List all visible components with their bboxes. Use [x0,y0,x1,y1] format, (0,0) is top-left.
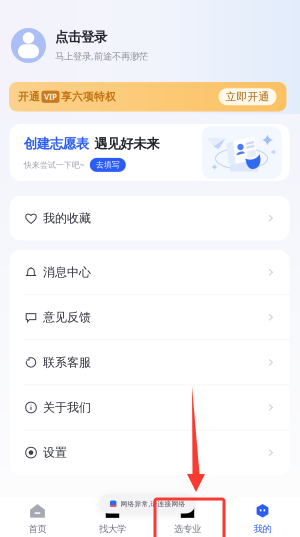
button[interactable]: 我的收藏 [9,196,289,240]
staticText: 马上登录,前途不再渺茫 [55,50,148,62]
staticText: 首页 [28,523,46,535]
staticText: 点击登录 [55,29,107,45]
staticText: 立即开通 [225,90,269,103]
button[interactable]: 关于我们 [9,385,289,430]
staticText: 联系客服 [43,355,91,370]
button[interactable]: 我的 [225,496,300,537]
button[interactable]: 消息中心 [9,250,289,294]
button[interactable]: 设置 [9,430,289,475]
staticText: 关于我们 [43,400,91,415]
button[interactable]: 联系客服 [9,340,289,385]
button[interactable]: 意见反馈 [9,295,289,339]
button[interactable]: 点击登录 [0,27,300,63]
button[interactable]: 创建志愿表 [9,124,289,181]
button[interactable]: 找大学 [75,496,150,537]
button[interactable]: 选专业 [150,496,225,537]
staticText: 快来尝试一下吧~ [24,160,85,170]
staticText: 设置 [43,445,67,460]
staticText: VIP [44,91,57,102]
staticText: 去填写 [96,160,120,170]
staticText: 意见反馈 [43,310,91,325]
staticText: 我的收藏 [43,211,91,225]
staticText: 享六项特权 [61,90,116,103]
staticText: 选专业 [174,523,201,535]
button[interactable]: 首页 [0,496,75,537]
staticText: 消息中心 [43,265,91,279]
button[interactable]: 开通 [9,82,286,111]
staticText: 开通 [18,90,40,103]
staticText: 网络异常,请连接网络 [120,499,185,508]
staticText: 找大学 [99,523,126,535]
staticText: 我的 [253,523,271,535]
staticText: 创建志愿表 [24,135,89,152]
staticText: 遇见好未来 [94,135,159,152]
